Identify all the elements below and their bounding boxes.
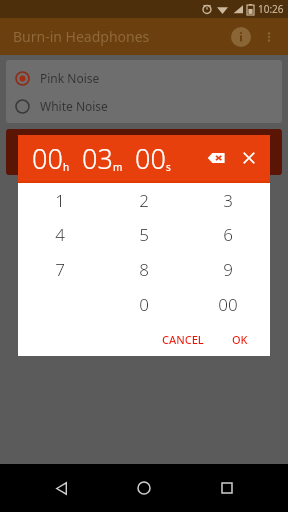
button[interactable]: Pink Noise (15, 70, 273, 86)
button[interactable]: White Noise (15, 98, 273, 114)
button[interactable]: Back (39, 466, 83, 510)
button[interactable]: 9 (186, 252, 270, 287)
button[interactable]: 4 (18, 217, 102, 252)
staticText: 9 (223, 258, 233, 281)
staticText: 4 (55, 223, 65, 246)
staticText: 0 (139, 293, 149, 316)
button[interactable]: Backspace (202, 144, 230, 172)
button[interactable]: 00 (186, 287, 270, 322)
button[interactable]: More options (256, 24, 282, 50)
staticText: s (166, 160, 171, 174)
staticText: 00 (32, 140, 63, 177)
button[interactable]: 6 (186, 217, 270, 252)
button[interactable]: 5 (102, 217, 186, 252)
button[interactable]: Home (122, 466, 166, 510)
staticText: 8 (139, 258, 149, 281)
staticText: 10:26 (258, 2, 284, 16)
staticText: 2 (139, 189, 149, 212)
staticText: 00 (218, 293, 238, 316)
button[interactable]: 7 (18, 252, 102, 287)
staticText: 3 (223, 189, 233, 212)
staticText: 1 (55, 189, 65, 212)
staticText: Burn-in Headphones (13, 27, 150, 46)
staticText: 6 (223, 223, 233, 246)
button[interactable]: CANCEL (154, 328, 212, 351)
staticText: White Noise (40, 98, 108, 114)
button[interactable]: 0 (102, 287, 186, 322)
staticText: m (113, 160, 123, 174)
button[interactable]: Clear (236, 145, 262, 171)
button[interactable]: Recents (205, 466, 249, 510)
staticText: 03 (82, 140, 113, 177)
button[interactable]: OK (224, 328, 256, 351)
button[interactable] (6, 129, 282, 175)
staticText: 7 (55, 258, 65, 281)
button[interactable]: 1 (18, 183, 102, 217)
staticText: 00 (135, 140, 166, 177)
button[interactable]: Info (226, 22, 256, 52)
button[interactable]: 3 (186, 183, 270, 217)
staticText: Pink Noise (40, 70, 100, 86)
staticText: 5 (139, 223, 149, 246)
staticText: CANCEL (162, 332, 204, 347)
button[interactable]: 8 (102, 252, 186, 287)
staticText: OK (232, 332, 248, 347)
staticText: h (63, 160, 70, 174)
button[interactable]: 2 (102, 183, 186, 217)
